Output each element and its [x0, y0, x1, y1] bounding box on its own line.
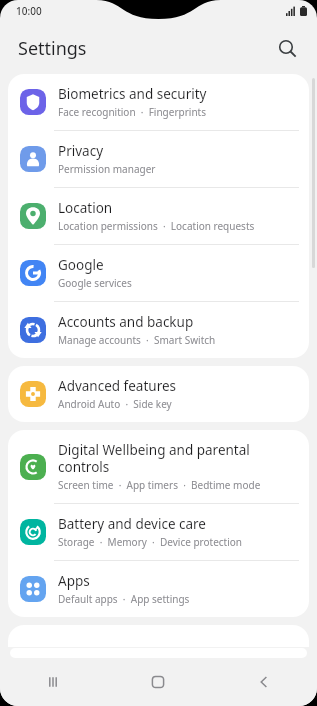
staticText: Android Auto · Side key — [58, 397, 172, 411]
staticText: Face recognition · Fingerprints — [58, 105, 206, 119]
button[interactable]: Biometrics and security — [8, 74, 309, 130]
button[interactable]: Search — [267, 28, 307, 68]
staticText: Storage · Memory · Device protection — [58, 535, 243, 549]
button[interactable]: Apps — [8, 561, 309, 617]
button[interactable]: Home — [105, 658, 211, 706]
staticText: Apps — [58, 572, 90, 590]
button[interactable]: Recent apps — [0, 658, 105, 706]
staticText: Advanced features — [58, 377, 177, 395]
button[interactable]: Privacy — [8, 131, 309, 187]
button[interactable]: Advanced features — [8, 366, 309, 422]
staticText: Battery and device care — [58, 515, 206, 533]
staticText: Privacy — [58, 142, 104, 160]
staticText: Google services — [58, 276, 132, 290]
staticText: 10:00 — [16, 4, 42, 18]
button[interactable]: Google — [8, 245, 309, 301]
button[interactable]: Location — [8, 188, 309, 244]
staticText: Accounts and backup — [58, 313, 194, 331]
staticText: Google — [58, 256, 104, 274]
button[interactable]: Accounts and backup — [8, 302, 309, 358]
staticText: Permission manager — [58, 162, 156, 176]
staticText: Location — [58, 199, 113, 217]
button[interactable]: Battery and device care — [8, 504, 309, 560]
staticText: Screen time · App timers · Bedtime mode — [58, 478, 261, 492]
staticText: Settings — [18, 36, 87, 61]
button[interactable]: Digital Wellbeing and parental controls — [8, 430, 309, 503]
button[interactable]: Back — [211, 658, 317, 706]
staticText: Location permissions · Location requests — [58, 219, 255, 233]
staticText: Default apps · App settings — [58, 592, 190, 606]
staticText: Biometrics and security — [58, 85, 207, 103]
staticText: Manage accounts · Smart Switch — [58, 333, 216, 347]
staticText: Digital Wellbeing and parental controls — [58, 441, 297, 476]
